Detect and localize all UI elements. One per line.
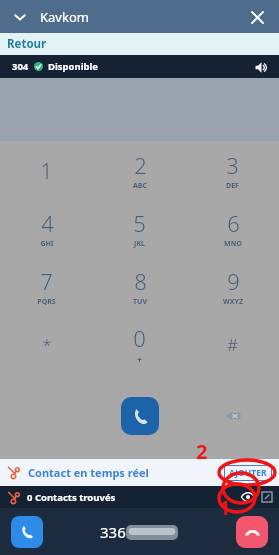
button[interactable]: 0 bbox=[93, 315, 186, 373]
button[interactable]: AJOUTER bbox=[224, 465, 272, 481]
staticText: PQRS bbox=[37, 297, 56, 307]
button[interactable]: Close bbox=[244, 4, 270, 30]
staticText: * bbox=[42, 333, 52, 356]
button[interactable]: Backspace bbox=[218, 401, 248, 431]
staticText: JKL bbox=[134, 239, 145, 249]
staticText: 6 bbox=[227, 208, 240, 238]
button[interactable]: * bbox=[0, 315, 93, 373]
button[interactable]: Recents bbox=[11, 516, 43, 548]
staticText: AJOUTER bbox=[229, 467, 267, 479]
button[interactable]: Show contacts bbox=[238, 487, 258, 507]
button[interactable]: 8 bbox=[93, 257, 186, 315]
staticText: 5 bbox=[133, 208, 146, 238]
staticText: 336 bbox=[100, 522, 126, 542]
staticText: Disponible bbox=[48, 60, 99, 73]
staticText: 3 bbox=[226, 150, 239, 180]
staticText: ABC bbox=[133, 181, 147, 191]
button[interactable]: Expand bbox=[258, 488, 276, 506]
button[interactable]: 3 bbox=[186, 141, 279, 199]
staticText: 8 bbox=[134, 266, 147, 296]
staticText: # bbox=[227, 333, 238, 356]
button[interactable]: 1 bbox=[0, 141, 93, 199]
staticText: + bbox=[137, 354, 142, 365]
button[interactable]: 9 bbox=[186, 257, 279, 315]
button[interactable]: Collapse bbox=[9, 6, 31, 28]
button[interactable]: Retour bbox=[0, 33, 279, 55]
staticText: 0 bbox=[133, 323, 146, 353]
button[interactable]: 6 bbox=[186, 199, 279, 257]
button[interactable]: Speaker bbox=[251, 57, 271, 77]
staticText: Contact en temps réel bbox=[28, 465, 149, 480]
staticText: DEF bbox=[226, 181, 239, 191]
staticText: 2 bbox=[134, 150, 147, 180]
staticText: TUV bbox=[133, 297, 147, 307]
button[interactable]: 4 bbox=[0, 199, 93, 257]
staticText: 7 bbox=[40, 266, 53, 296]
staticText: 0 Contacts trouvés bbox=[27, 491, 116, 504]
staticText: 4 bbox=[41, 208, 54, 238]
staticText: GHI bbox=[40, 239, 54, 249]
staticText: 9 bbox=[227, 266, 240, 296]
staticText: 2 bbox=[196, 438, 208, 465]
staticText: 1 bbox=[219, 494, 231, 521]
staticText: Kavkom bbox=[40, 8, 89, 26]
button[interactable]: Call bbox=[121, 397, 159, 435]
button[interactable]: 304 bbox=[0, 55, 279, 78]
button[interactable]: 5 bbox=[93, 199, 186, 257]
staticText: WXYZ bbox=[223, 297, 243, 307]
button[interactable]: Hang up bbox=[236, 516, 268, 548]
staticText: 1 bbox=[40, 155, 53, 185]
staticText: Retour bbox=[7, 36, 47, 52]
button[interactable]: # bbox=[186, 315, 279, 373]
button[interactable]: 7 bbox=[0, 257, 93, 315]
staticText: MNO bbox=[224, 239, 242, 249]
staticText: 304 bbox=[12, 60, 29, 73]
button[interactable]: 2 bbox=[93, 141, 186, 199]
